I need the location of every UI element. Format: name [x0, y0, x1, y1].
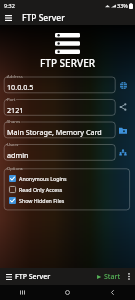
staticText: Main Storage, Memory Card — [7, 127, 102, 137]
staticText: Shares — [7, 119, 21, 125]
button[interactable]: 2121 — [4, 100, 115, 116]
button[interactable]: Show Hidden Files — [9, 195, 65, 206]
button[interactable]: Start — [94, 270, 123, 284]
button[interactable]: Navigation menu — [0, 11, 17, 25]
staticText: 9:32 — [4, 2, 15, 9]
staticText: 33% — [117, 2, 128, 9]
button[interactable]: Read Only Access — [9, 184, 63, 195]
button[interactable]: 10.0.0.5 — [4, 77, 115, 93]
staticText: Users — [7, 142, 19, 148]
button[interactable]: Main Storage, Memory Card — [4, 122, 115, 138]
button[interactable]: admin — [4, 145, 115, 161]
staticText: FTP Server — [22, 12, 65, 24]
staticText: Address — [7, 74, 23, 80]
staticText: 10.0.0.5 — [7, 82, 34, 92]
button[interactable]: Folders — [114, 121, 132, 139]
staticText: Read Only Access — [19, 186, 63, 193]
staticText: FTP SERVER — [40, 56, 96, 70]
staticText: admin — [7, 150, 29, 160]
staticText: 2121 — [7, 105, 24, 115]
staticText: FTP Server — [15, 272, 51, 282]
button[interactable]: Recent apps — [0, 285, 45, 300]
button[interactable]: Back — [90, 285, 135, 300]
staticText: Start — [104, 272, 121, 282]
button[interactable]: Users — [114, 143, 132, 161]
staticText: Options — [7, 166, 23, 172]
staticText: Port — [7, 97, 16, 103]
staticText: Anonymous Logins — [19, 175, 67, 182]
staticText: Show Hidden Files — [19, 197, 65, 204]
button[interactable]: Anonymous Logins — [9, 173, 67, 184]
button[interactable]: Network address — [114, 76, 132, 94]
button[interactable]: Home — [45, 285, 90, 300]
button[interactable]: App menu — [4, 272, 13, 281]
button[interactable]: Share — [114, 98, 132, 116]
button[interactable]: More options — [123, 271, 134, 282]
